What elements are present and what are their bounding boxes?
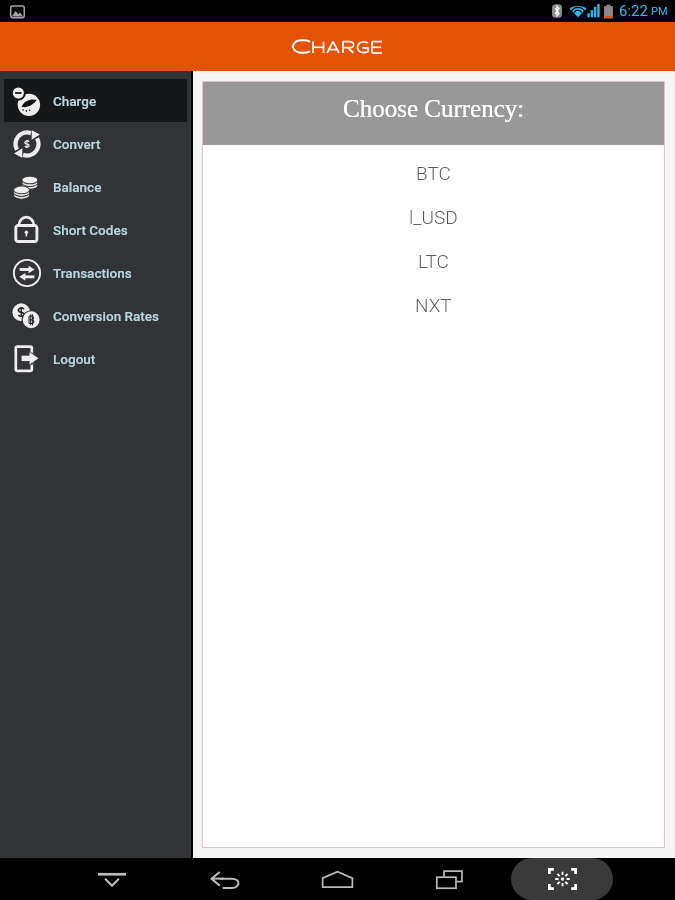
button[interactable]: Convert: [4, 122, 187, 165]
button[interactable]: Hide navigation: [83, 858, 141, 900]
button[interactable]: Short Codes: [4, 208, 187, 251]
button[interactable]: BTC: [202, 151, 665, 195]
staticText: Logout: [53, 351, 96, 367]
staticText: Short Codes: [53, 222, 128, 238]
button[interactable]: l_USD: [202, 195, 665, 239]
button[interactable]: LTC: [202, 239, 665, 283]
button[interactable]: Transactions: [4, 251, 187, 294]
staticText: PM: [651, 5, 668, 18]
staticText: Convert: [53, 136, 101, 152]
staticText: l_USD: [409, 206, 458, 228]
button[interactable]: Charge: [4, 79, 187, 122]
button[interactable]: Balance: [4, 165, 187, 208]
staticText: Conversion Rates: [53, 308, 160, 324]
staticText: Choose Currency:: [343, 95, 525, 123]
staticText: Transactions: [53, 265, 132, 281]
staticText: Balance: [53, 179, 102, 195]
button[interactable]: Recent apps: [421, 858, 479, 900]
button[interactable]: Home: [308, 858, 366, 900]
staticText: Charge: [53, 93, 97, 109]
staticText: LTC: [418, 250, 449, 272]
staticText: 6:22: [619, 2, 648, 20]
staticText: BTC: [416, 162, 451, 184]
button[interactable]: Back: [196, 858, 254, 900]
button[interactable]: Screenshot: [511, 858, 613, 900]
button[interactable]: Conversion Rates: [4, 294, 187, 337]
staticText: NXT: [415, 294, 452, 316]
button[interactable]: Logout: [4, 337, 187, 380]
button[interactable]: NXT: [202, 283, 665, 327]
